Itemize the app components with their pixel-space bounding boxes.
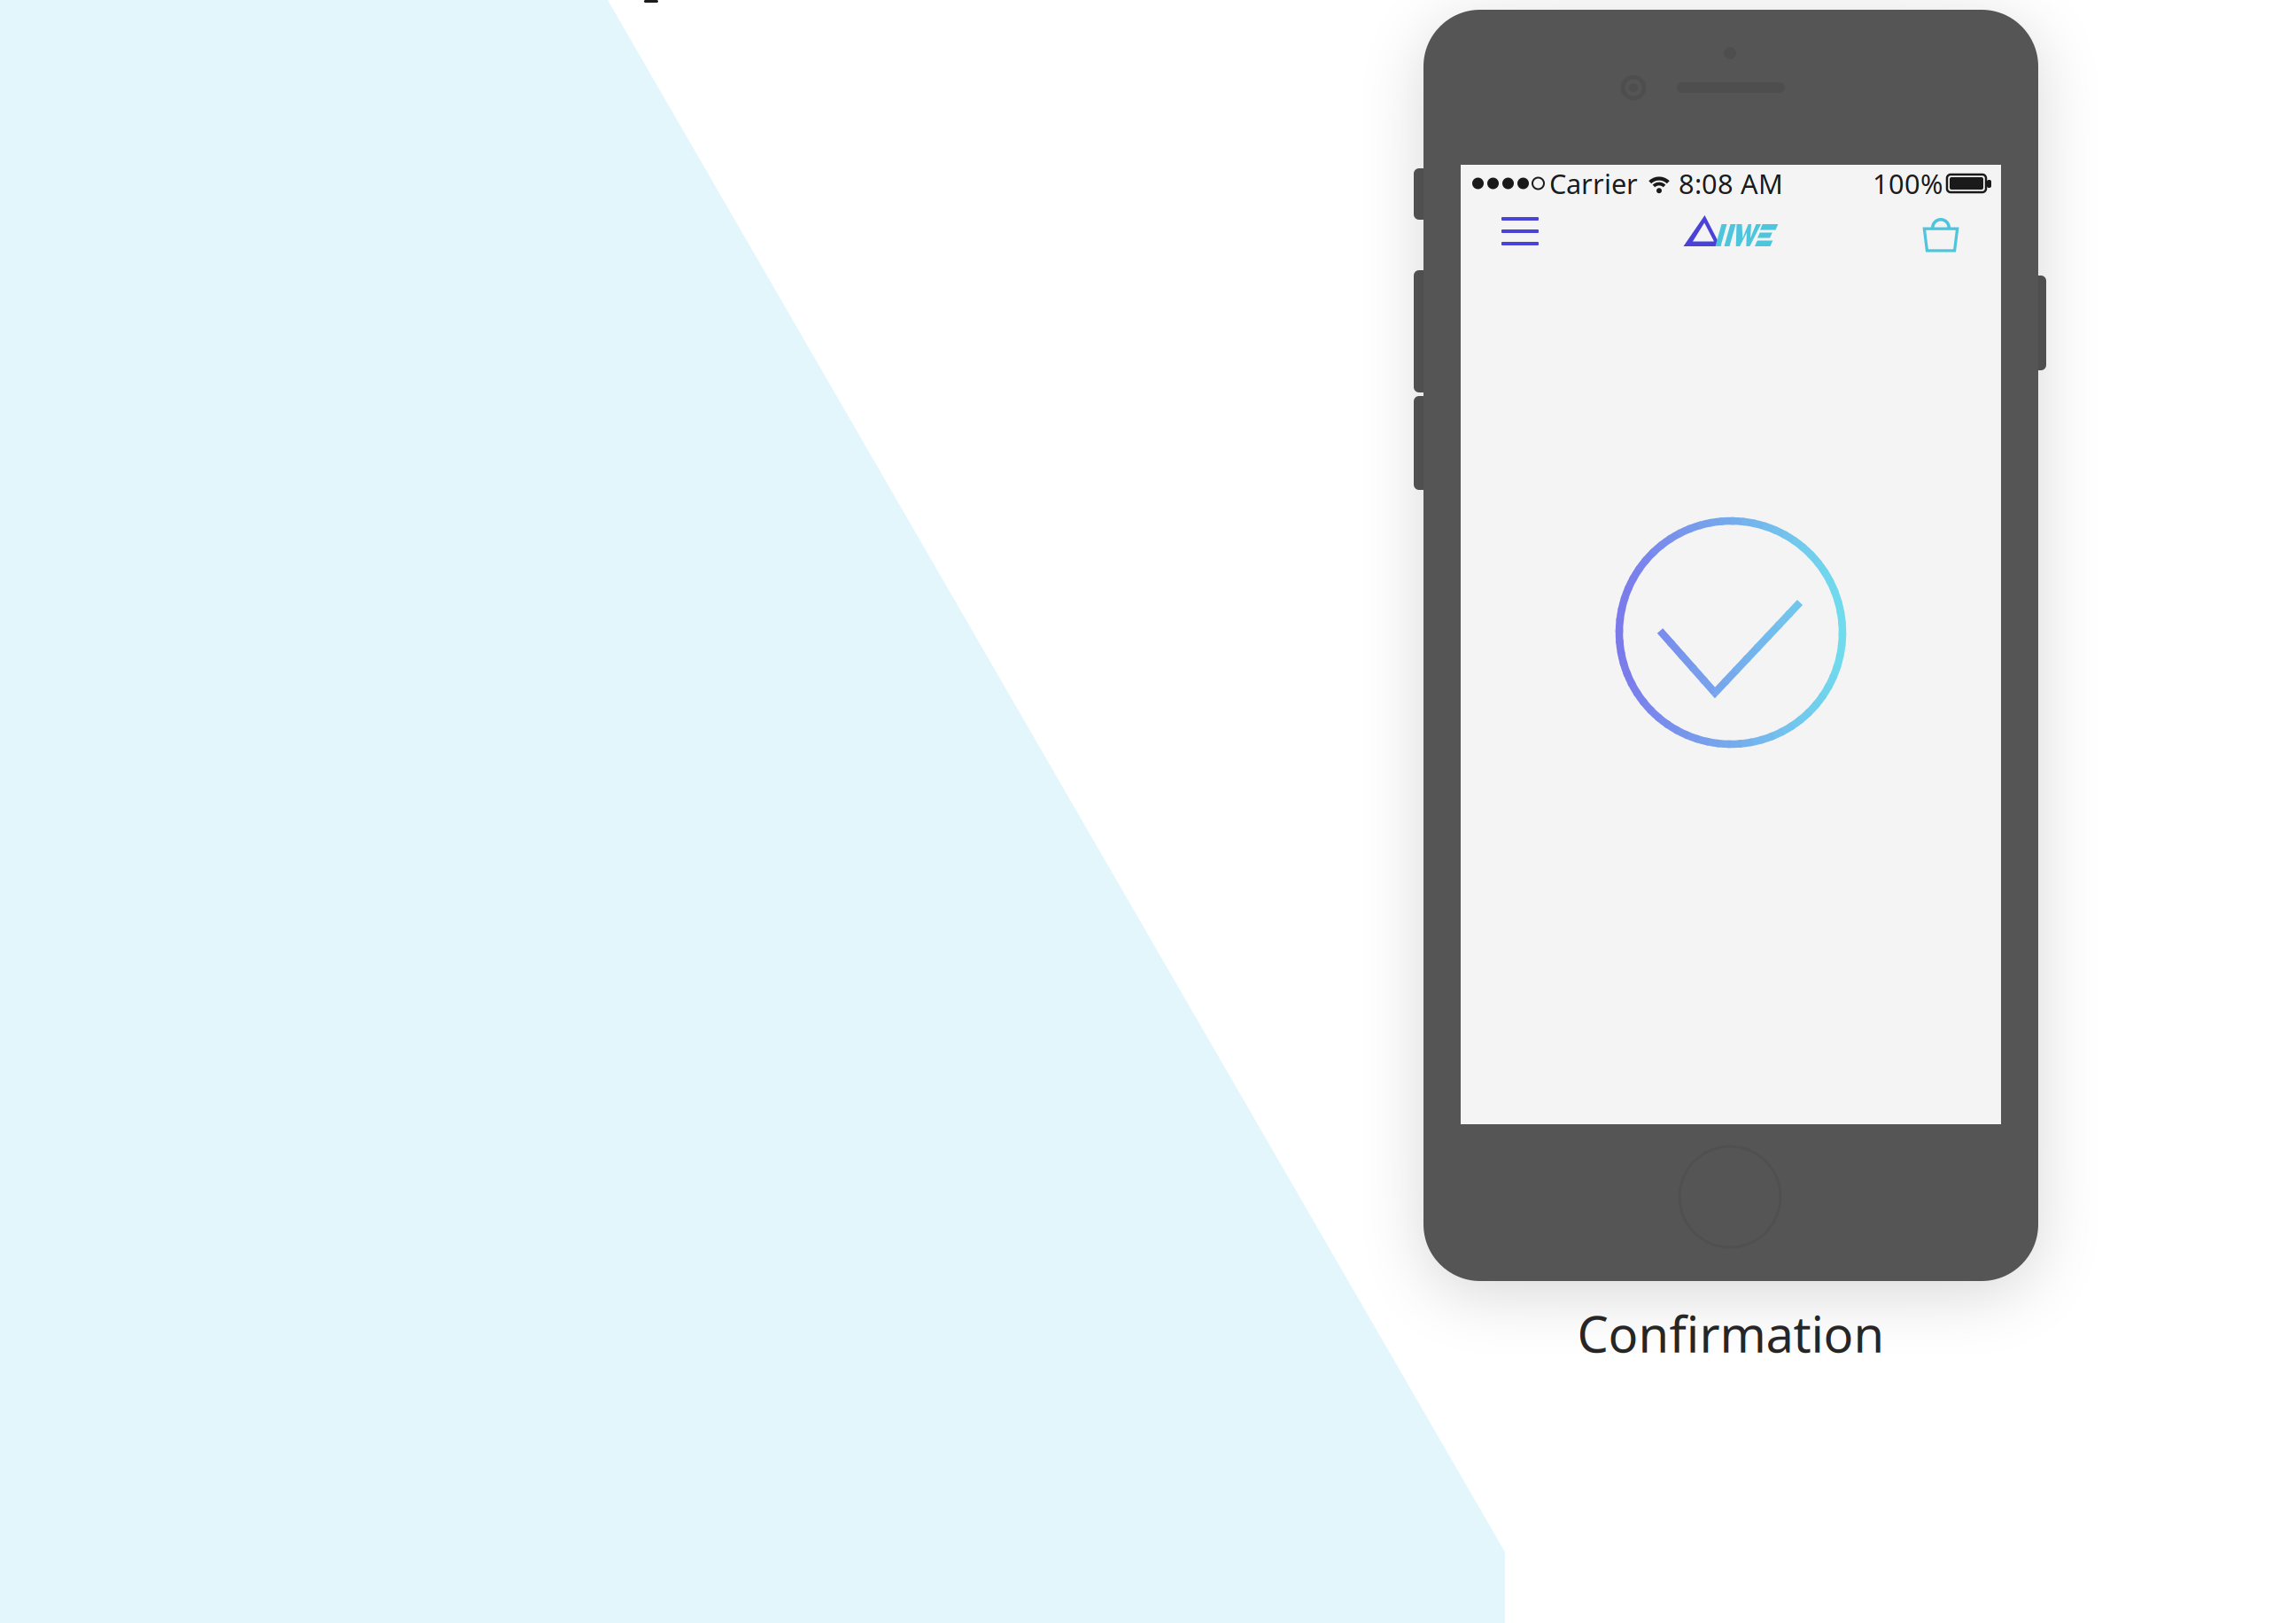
button[interactable]: Cart <box>1896 200 2001 262</box>
staticText: Confirmation <box>1577 1300 1885 1366</box>
button[interactable]: Menu <box>1461 200 1565 262</box>
staticText: Carrier <box>1549 165 1638 201</box>
staticText: 100% <box>1873 165 1943 201</box>
staticText: 8:08 AM <box>1679 165 1783 201</box>
